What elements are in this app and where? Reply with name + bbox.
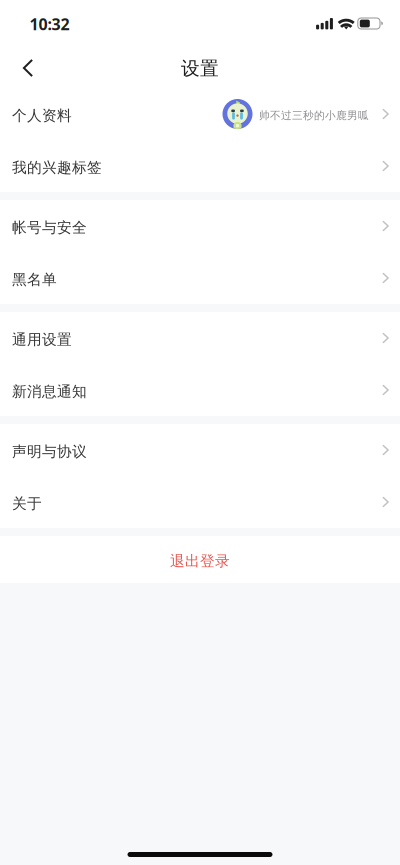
staticText: 声明与协议 <box>12 442 87 460</box>
button[interactable]: 通用设置 <box>0 312 400 364</box>
button[interactable]: Back <box>6 44 50 88</box>
staticText: 通用设置 <box>12 330 72 348</box>
button[interactable]: 退出登录 <box>0 536 400 583</box>
button[interactable]: 新消息通知 <box>0 364 400 416</box>
staticText: 关于 <box>12 494 42 512</box>
button[interactable]: 帐号与安全 <box>0 200 400 252</box>
staticText: 黑名单 <box>12 270 57 288</box>
staticText: 退出登录 <box>170 552 230 570</box>
button[interactable]: 关于 <box>0 476 400 528</box>
staticText: 新消息通知 <box>12 382 87 400</box>
staticText: 帐号与安全 <box>12 218 87 236</box>
staticText: 10:32 <box>29 13 69 35</box>
staticText: 我的兴趣标签 <box>12 158 102 176</box>
staticText: 设置 <box>181 57 219 80</box>
button[interactable]: 声明与协议 <box>0 424 400 476</box>
staticText: 帅不过三秒的小鹿男呱 <box>259 109 369 122</box>
button[interactable]: 黑名单 <box>0 252 400 304</box>
button[interactable]: 个人资料 <box>0 88 400 140</box>
staticText: 个人资料 <box>12 106 72 124</box>
button[interactable]: 我的兴趣标签 <box>0 140 400 192</box>
